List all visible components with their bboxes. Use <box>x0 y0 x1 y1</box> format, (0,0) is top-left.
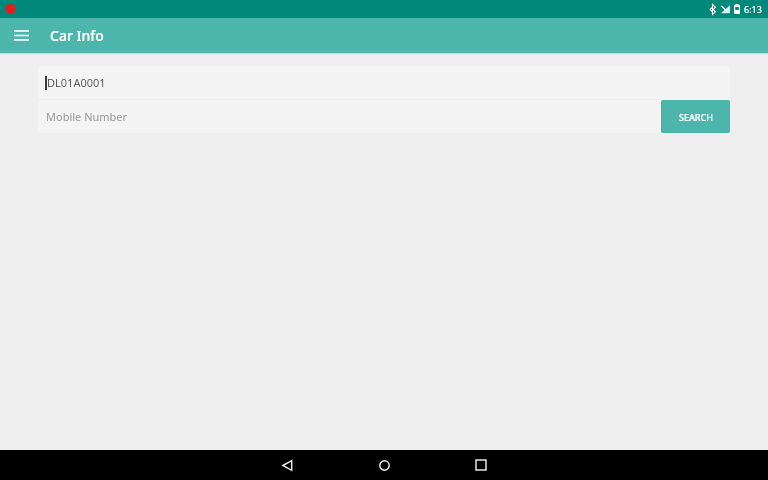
button[interactable]: Home <box>360 450 408 480</box>
staticText: SEARCH <box>679 111 713 123</box>
button[interactable]: DL01A0001 <box>38 66 730 99</box>
button[interactable]: Open navigation menu <box>3 18 39 53</box>
staticText: Car Info <box>50 26 104 45</box>
staticText: 6:13 <box>744 3 762 15</box>
button[interactable]: SEARCH <box>661 100 730 133</box>
staticText: Mobile Number <box>46 109 128 124</box>
button[interactable]: Mobile Number <box>38 100 661 133</box>
button[interactable]: Recent apps <box>457 450 505 480</box>
staticText: DL01A0001 <box>47 75 106 90</box>
button[interactable]: Back <box>263 450 311 480</box>
